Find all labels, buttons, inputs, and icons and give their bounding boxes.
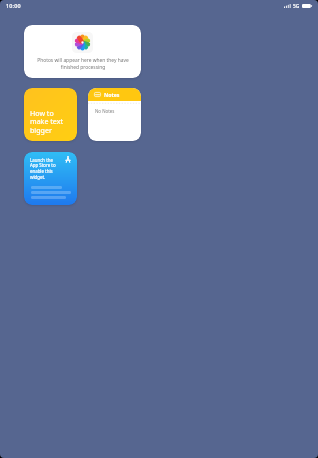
button[interactable]: Launch the App Store to enable this widg… [24,152,77,205]
staticText: How to make text bigger [30,108,63,135]
other: Cellular signal [284,4,291,8]
button[interactable]: How to make text bigger [24,88,77,141]
staticText: Notes [104,91,120,98]
button[interactable]: Notes [88,88,141,141]
staticText: Photos will appear here when they have f… [34,57,132,71]
other: Battery [302,4,312,8]
staticText: 5G [293,3,300,10]
staticText: No Notes [95,108,115,114]
other: App Store [65,156,71,163]
other: Photos [72,32,93,53]
button[interactable]: Photos [24,25,141,78]
staticText: 10:00 [6,2,21,9]
staticText: Launch the App Store to enable this widg… [30,157,56,181]
